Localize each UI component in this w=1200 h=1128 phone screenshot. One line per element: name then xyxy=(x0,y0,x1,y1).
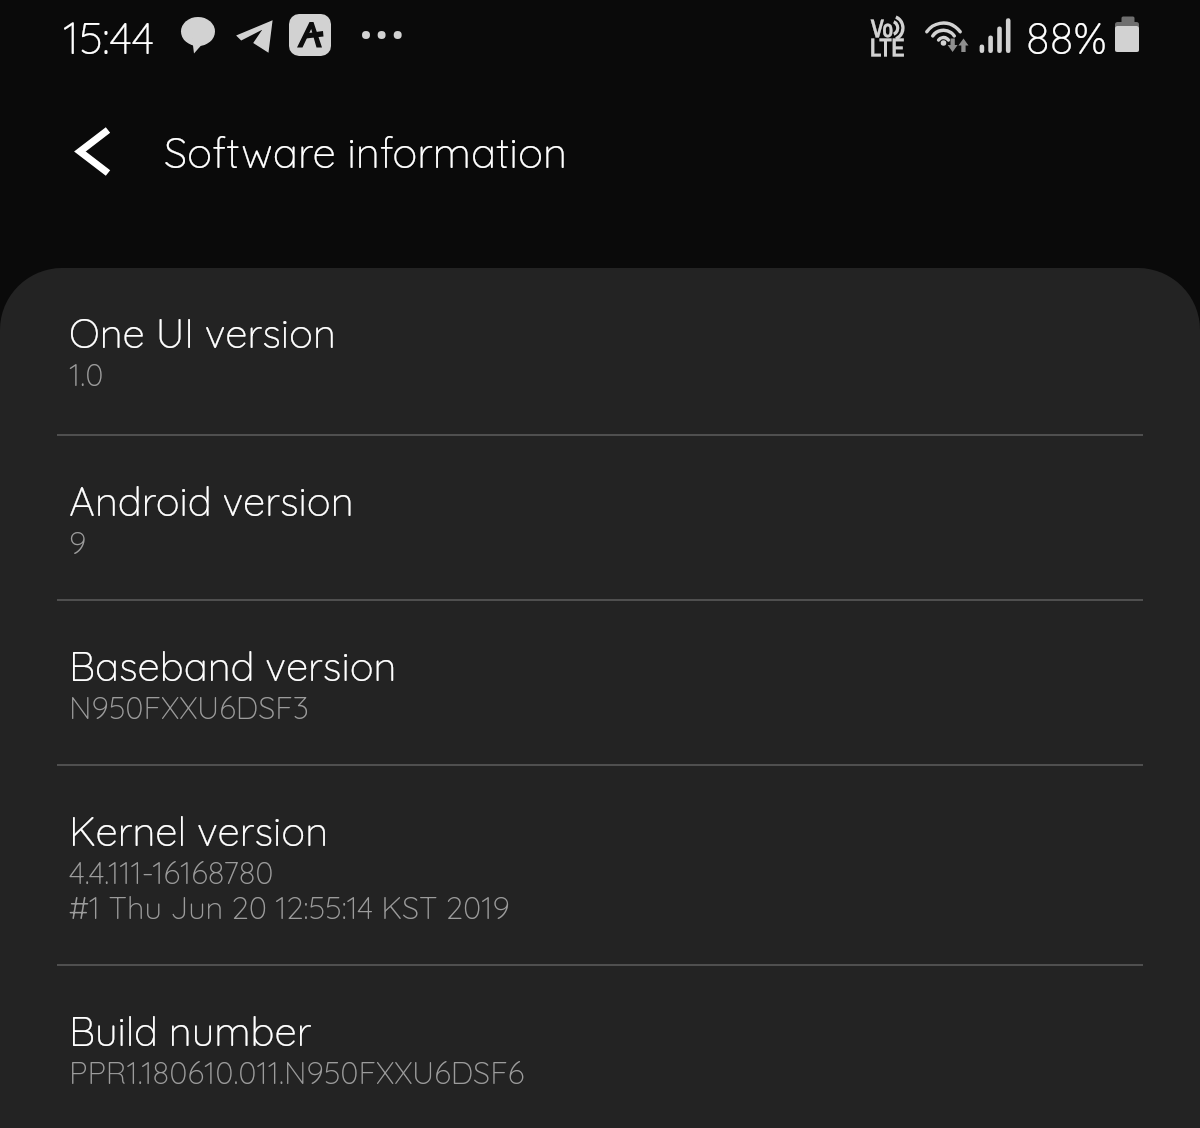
other: Claude notification xyxy=(289,14,331,56)
staticText: LTE xyxy=(870,31,905,63)
staticText: Software information xyxy=(164,126,568,179)
staticText: Build number xyxy=(69,1006,312,1056)
other: Messages notification xyxy=(181,17,217,55)
staticText: Baseband version xyxy=(69,641,397,691)
staticText: Kernel version xyxy=(69,806,329,856)
staticText: 9 xyxy=(69,523,87,562)
staticText: One UI version xyxy=(69,308,336,358)
staticText: 1.0 xyxy=(69,355,104,394)
staticText: 4.4.111-16168780 #1 Thu Jun 20 12:55:14 … xyxy=(69,853,510,927)
staticText: 15:44 xyxy=(63,10,154,65)
button[interactable]: One UI version xyxy=(0,268,1200,434)
other: Battery 88 percent xyxy=(1112,14,1144,56)
other: VoLTE xyxy=(866,12,912,56)
button[interactable]: Navigate up xyxy=(50,108,134,194)
other: Wi-Fi connected xyxy=(918,12,974,56)
other: Telegram notification xyxy=(234,14,280,58)
button[interactable]: Build number xyxy=(0,966,1200,1128)
button[interactable]: Baseband version xyxy=(0,601,1200,764)
other: Mobile signal full xyxy=(976,14,1016,56)
staticText: Vo xyxy=(871,13,894,44)
button[interactable]: Android version xyxy=(0,436,1200,599)
staticText: Android version xyxy=(69,476,354,526)
staticText: PPR1.180610.011.N950FXXU6DSF6 xyxy=(69,1053,525,1092)
staticText: 88% xyxy=(1026,10,1107,65)
button[interactable]: Kernel version xyxy=(0,766,1200,964)
other: More notifications xyxy=(358,28,406,44)
staticText: N950FXXU6DSF3 xyxy=(69,688,309,727)
